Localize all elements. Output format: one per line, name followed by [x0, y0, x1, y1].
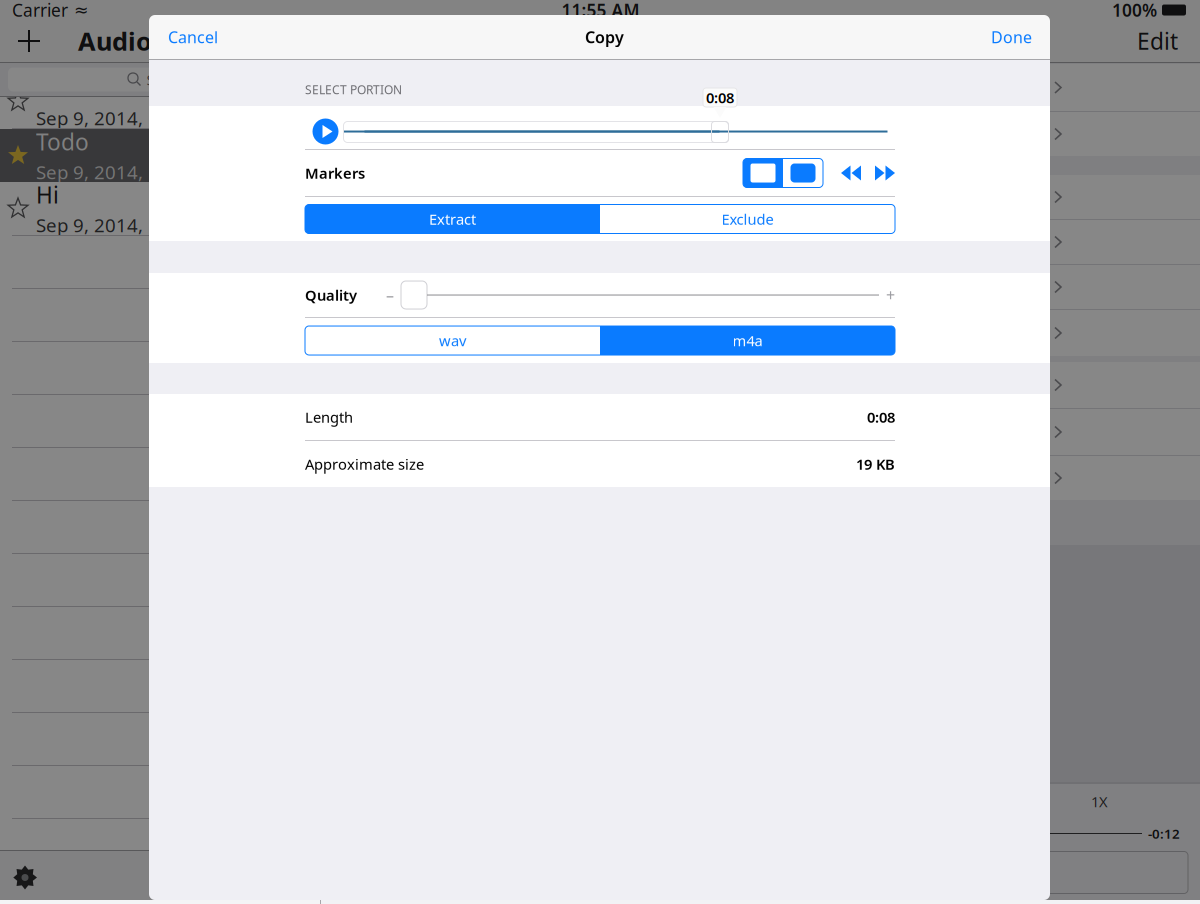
- staticText: Carrier: [12, 0, 68, 21]
- staticText: Markers: [305, 163, 365, 183]
- staticText: –: [386, 284, 394, 306]
- staticText: Hi: [36, 180, 59, 210]
- staticText: SELECT PORTION: [305, 81, 402, 97]
- staticText: ≈: [74, 0, 89, 20]
- staticText: m4a: [732, 331, 762, 350]
- button[interactable]: Done: [983, 18, 1040, 56]
- staticText: Exclude: [721, 209, 773, 229]
- button[interactable]: Start marker: [743, 158, 783, 187]
- staticText: Sep 9, 2014, 10:00 AM: [36, 160, 231, 184]
- staticText: Edit: [1137, 26, 1178, 56]
- staticText: wav: [439, 331, 466, 350]
- staticText: Approximate size: [305, 454, 424, 474]
- staticText: Search: [146, 70, 192, 89]
- button[interactable]: Interview: [0, 75, 320, 128]
- button[interactable]: End marker: [783, 158, 823, 187]
- button[interactable]: Todo: [0, 129, 320, 182]
- staticText: -0:12: [1148, 825, 1180, 842]
- staticText: Quality: [305, 285, 357, 305]
- button[interactable]: Edit: [1123, 18, 1192, 64]
- button[interactable]: Settings: [12, 864, 38, 890]
- staticText: 11:55 AM: [561, 0, 639, 21]
- staticText: Cancel: [168, 26, 218, 48]
- button[interactable]: Cancel: [160, 18, 226, 56]
- staticText: Audio Memos: [78, 24, 252, 58]
- staticText: Length: [305, 407, 353, 427]
- button[interactable]: m4a: [600, 326, 895, 355]
- staticText: +: [886, 284, 895, 306]
- button[interactable]: Hi: [0, 182, 320, 235]
- button[interactable]: Rewind: [841, 165, 861, 180]
- staticText: Sep 9, 2014, 10:00 AM: [36, 106, 231, 130]
- staticText: Extract: [429, 209, 476, 229]
- staticText: Interview: [36, 73, 136, 103]
- staticText: 0:08: [706, 88, 734, 107]
- staticText: Copy: [585, 26, 624, 48]
- button[interactable]: Play: [312, 118, 338, 144]
- staticText: 1X: [1091, 792, 1108, 811]
- staticText: 100%: [1112, 0, 1157, 21]
- staticText: 0:08: [867, 407, 895, 427]
- staticText: 19 KB: [856, 454, 895, 474]
- staticText: Todo: [36, 127, 89, 157]
- button[interactable]: Add: [8, 20, 50, 62]
- staticText: Sep 9, 2014, 10:00 AM: [36, 213, 231, 237]
- button[interactable]: Exclude: [600, 204, 895, 233]
- button[interactable]: Fast forward: [875, 165, 895, 180]
- button[interactable]: wav: [305, 326, 600, 355]
- button[interactable]: Extract: [305, 204, 600, 233]
- staticText: Done: [991, 26, 1032, 48]
